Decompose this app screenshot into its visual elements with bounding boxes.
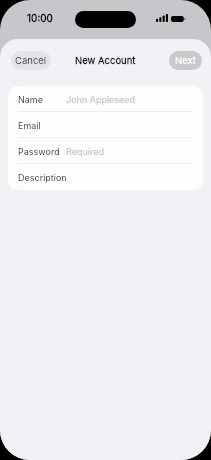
- staticText: Next: [175, 55, 196, 66]
- staticText: John Appleseed: [66, 94, 136, 105]
- button[interactable]: Name: [8, 86, 203, 112]
- staticText: Name: [18, 94, 43, 105]
- button[interactable]: Email: [8, 112, 203, 138]
- staticText: Required: [66, 146, 104, 157]
- other: Battery: [171, 16, 186, 22]
- button[interactable]: Next: [169, 51, 202, 70]
- staticText: New Account: [75, 55, 136, 66]
- other: Cellular signal: [156, 14, 168, 22]
- button[interactable]: Cancel: [11, 51, 51, 70]
- staticText: Password: [18, 146, 60, 157]
- staticText: Description: [18, 172, 67, 183]
- staticText: Email: [18, 120, 41, 131]
- staticText: 10:00: [27, 12, 53, 24]
- button[interactable]: Description: [8, 164, 203, 190]
- button[interactable]: Password: [8, 138, 203, 164]
- staticText: Cancel: [15, 55, 47, 66]
